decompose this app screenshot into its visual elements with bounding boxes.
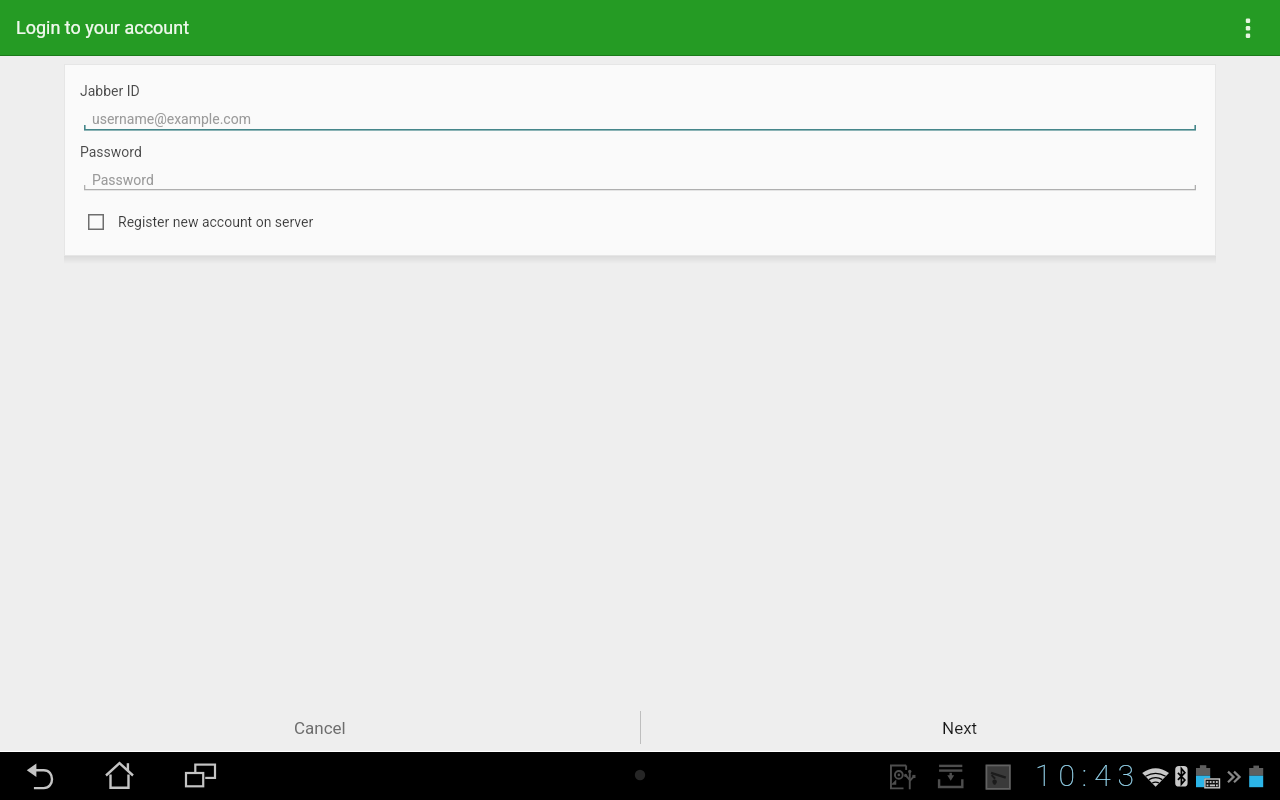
staticText: Jabber ID [80, 83, 140, 99]
button[interactable]: Next [640, 704, 1280, 751]
staticText: Login to your account [16, 17, 190, 38]
button[interactable]: Register new account on server [80, 204, 350, 240]
button[interactable]: More options [1220, 0, 1276, 55]
staticText: username@example.com [92, 111, 251, 127]
staticText: Password [80, 144, 142, 160]
staticText: Register new account on server [118, 214, 314, 230]
button[interactable]: Back [16, 752, 64, 800]
button[interactable]: Home [96, 752, 144, 800]
staticText: Password [92, 172, 154, 188]
button[interactable]: Recent apps [176, 752, 224, 800]
staticText: 10:43 [1035, 758, 1142, 793]
staticText: Cancel [294, 718, 346, 738]
button[interactable]: System status [1030, 752, 1270, 800]
button[interactable]: Cancel [0, 704, 640, 751]
staticText: Next [942, 718, 978, 738]
